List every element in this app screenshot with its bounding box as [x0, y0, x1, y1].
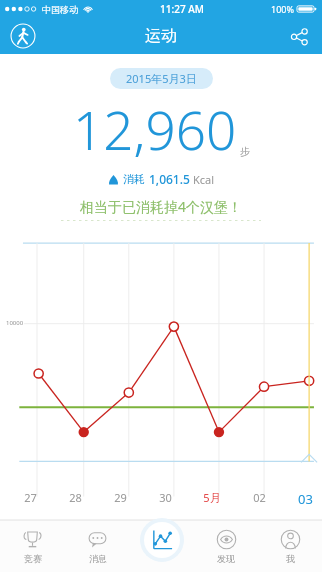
staticText: 100%: [271, 3, 294, 15]
button[interactable]: 发现: [194, 520, 258, 572]
staticText: 运动: [145, 26, 177, 46]
button[interactable]: 我: [258, 520, 322, 572]
staticText: 步: [240, 145, 250, 158]
button[interactable]: 竞赛: [0, 520, 65, 572]
staticText: 1,061.5: [149, 171, 190, 187]
staticText: 消耗: [123, 172, 145, 186]
staticText: 10000: [6, 319, 24, 327]
staticText: 11:27 AM: [160, 2, 204, 16]
staticText: 5月: [203, 490, 221, 505]
staticText: 27: [24, 490, 37, 505]
staticText: 竞赛: [24, 553, 42, 564]
staticText: 消息: [89, 553, 107, 564]
staticText: Kcal: [193, 172, 215, 187]
button[interactable]: Activity chart: [140, 518, 184, 562]
button[interactable]: 消息: [65, 520, 130, 572]
staticText: 28: [69, 490, 82, 505]
staticText: 02: [253, 490, 266, 505]
staticText: 我: [286, 553, 295, 564]
staticText: 2015年5月3日: [126, 71, 197, 86]
staticText: 29: [114, 490, 127, 505]
button[interactable]: 2015年5月3日: [110, 68, 213, 89]
staticText: 30: [159, 490, 172, 505]
button[interactable]: Share: [284, 21, 314, 51]
staticText: 03: [298, 490, 313, 508]
button[interactable]: Walking activity: [8, 21, 38, 51]
staticText: 中国移动: [42, 4, 78, 15]
button[interactable]: 相当于已消耗掉4个汉堡！: [80, 197, 243, 216]
staticText: 12,960: [73, 93, 237, 165]
staticText: 发现: [217, 553, 235, 564]
